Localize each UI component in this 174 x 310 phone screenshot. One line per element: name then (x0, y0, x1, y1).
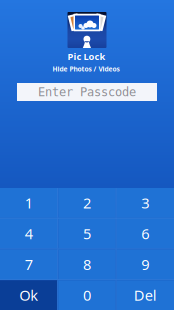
button[interactable]: 6 (117, 219, 174, 249)
button[interactable]: 3 (117, 188, 174, 218)
button[interactable]: 0 (58, 280, 116, 310)
staticText: 0 (83, 285, 91, 305)
staticText: 4 (25, 224, 33, 243)
staticText: Enter Passcode (38, 85, 136, 99)
button[interactable]: 8 (58, 249, 116, 279)
staticText: 6 (141, 224, 149, 243)
button[interactable]: 1 (0, 188, 57, 218)
staticText: 1 (25, 193, 33, 213)
staticText: 2 (83, 193, 91, 213)
staticText: 7 (25, 255, 33, 274)
staticText: Pic Lock (67, 50, 105, 63)
staticText: 8 (83, 255, 91, 274)
button[interactable]: Ok (0, 280, 57, 310)
staticText: 5 (83, 224, 91, 243)
staticText: 3 (141, 193, 149, 213)
button[interactable]: 5 (58, 219, 116, 249)
staticText: Hide Photos / Videos (52, 65, 119, 73)
staticText: 9 (141, 255, 149, 274)
button[interactable]: Del (117, 280, 174, 310)
button[interactable]: 7 (0, 249, 57, 279)
button[interactable]: 4 (0, 219, 57, 249)
button[interactable]: Enter Passcode (17, 83, 157, 101)
staticText: Ok (19, 285, 38, 305)
button[interactable]: 9 (117, 249, 174, 279)
staticText: Del (134, 285, 157, 305)
button[interactable]: 2 (58, 188, 116, 218)
